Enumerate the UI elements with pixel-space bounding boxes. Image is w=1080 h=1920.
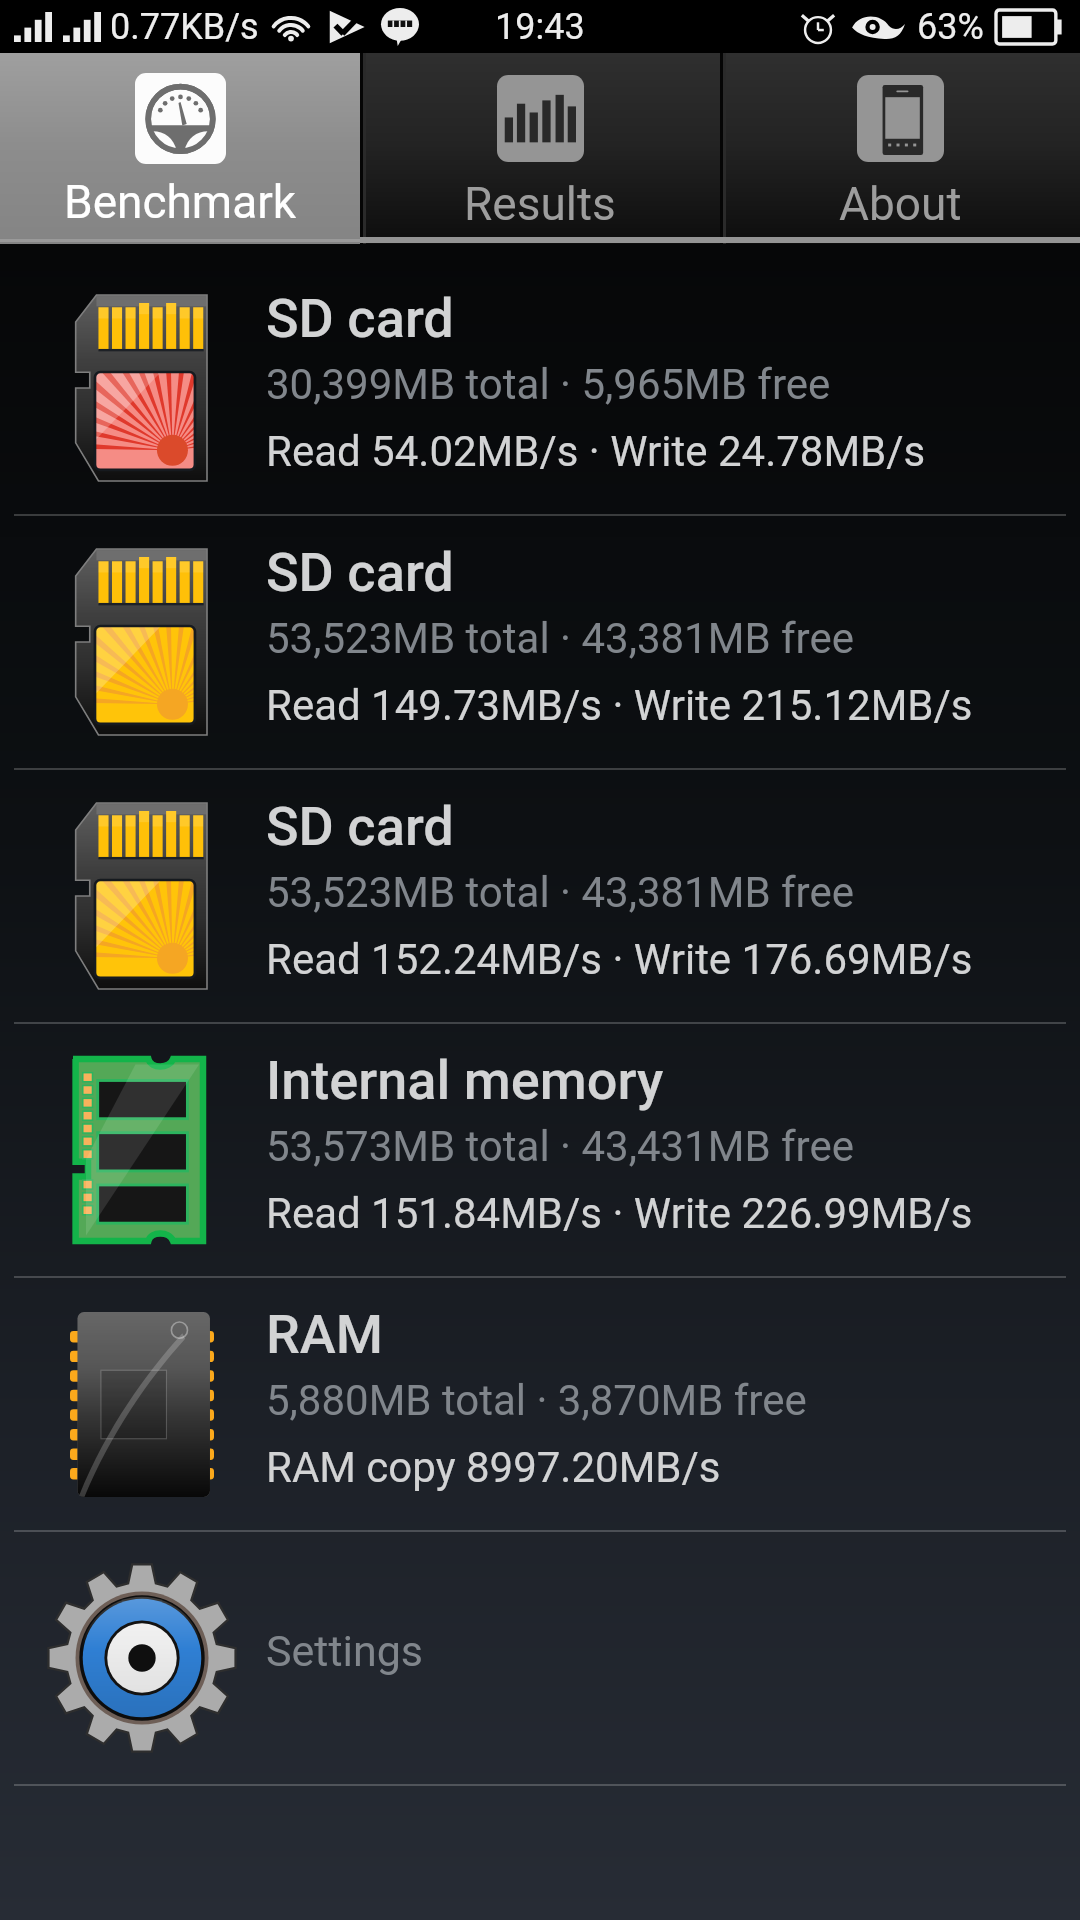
staticText: Internal memory (266, 1049, 664, 1112)
staticText: 53,523MB total · 43,381MB free (266, 868, 854, 917)
staticText: Read 149.73MB/s · Write 215.12MB/s (266, 681, 973, 730)
staticText: RAM copy 8997.20MB/s (266, 1443, 721, 1492)
staticText: 63% (917, 6, 984, 48)
staticText: SD card (266, 795, 454, 858)
button[interactable]: Benchmark (0, 53, 360, 244)
staticText: 53,523MB total · 43,381MB free (266, 614, 854, 663)
button[interactable]: Results (360, 53, 720, 244)
button[interactable]: Settings (0, 1532, 1080, 1784)
staticText: Read 152.24MB/s · Write 176.69MB/s (266, 935, 973, 984)
button[interactable]: SD card, 53,523MB total · 43,381MB free,… (0, 516, 1080, 768)
staticText: Results (464, 177, 616, 231)
staticText: RAM (266, 1303, 383, 1366)
button[interactable]: SD card, 53,523MB total · 43,381MB free,… (0, 770, 1080, 1022)
staticText: 53,573MB total · 43,431MB free (266, 1122, 854, 1171)
staticText: 0.77KB/s (110, 6, 259, 48)
button[interactable]: Internal memory, 53,573MB total · 43,431… (0, 1024, 1080, 1276)
staticText: 30,399MB total · 5,965MB free (266, 360, 831, 409)
button[interactable]: About (720, 53, 1080, 244)
button[interactable]: RAM, 5,880MB total · 3,870MB free, RAM c… (0, 1278, 1080, 1530)
staticText: About (839, 177, 962, 231)
staticText: Read 151.84MB/s · Write 226.99MB/s (266, 1189, 973, 1238)
staticText: SD card (266, 541, 454, 604)
button[interactable]: SD card, 30,399MB total · 5,965MB free, … (0, 262, 1080, 514)
staticText: 19:43 (495, 6, 585, 48)
staticText: Read 54.02MB/s · Write 24.78MB/s (266, 427, 926, 476)
staticText: Settings (266, 1626, 424, 1676)
staticText: Benchmark (64, 175, 297, 229)
staticText: 5,880MB total · 3,870MB free (266, 1376, 807, 1425)
staticText: SD card (266, 287, 454, 350)
